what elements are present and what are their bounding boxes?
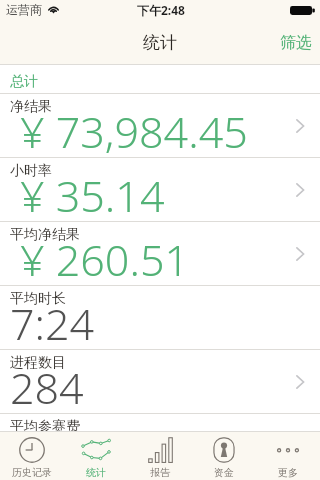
button[interactable]: 小时率 <box>0 158 320 222</box>
staticText: 资金 <box>214 466 234 479</box>
staticText: 下午2:48 <box>137 2 185 18</box>
staticText: 报告 <box>150 466 170 479</box>
staticText: 运营商 <box>6 2 42 17</box>
staticText: 平均净结果 <box>10 226 80 244</box>
staticText: ¥ 35.14 <box>20 166 165 225</box>
staticText: 进程数目 <box>10 354 66 372</box>
button[interactable]: 平均时长 <box>0 286 320 350</box>
staticText: 平均时长 <box>10 290 66 308</box>
staticText: 小时率 <box>10 162 52 180</box>
staticText: 更多 <box>278 466 298 479</box>
button[interactable]: 平均净结果 <box>0 222 320 286</box>
staticText: 统计 <box>143 32 177 53</box>
staticText: ¥ 73,984.45 <box>20 102 248 161</box>
staticText: 总计 <box>10 73 38 91</box>
staticText: 筛选 <box>280 33 312 53</box>
staticText: 7:24 <box>10 294 95 353</box>
staticText: 统计 <box>86 466 106 479</box>
staticText: 历史记录 <box>12 466 52 479</box>
button[interactable]: 历史记录 <box>0 431 64 480</box>
staticText: 284 <box>10 358 84 417</box>
button[interactable]: 筛选 <box>266 20 320 65</box>
staticText: 平均参赛费 <box>10 418 80 435</box>
button[interactable]: 更多 <box>256 431 320 480</box>
button[interactable]: 净结果 <box>0 94 320 158</box>
button[interactable]: 统计 <box>64 431 128 480</box>
button[interactable]: 进程数目 <box>0 350 320 414</box>
staticText: ¥ 260.51 <box>20 230 189 289</box>
staticText: 净结果 <box>10 98 52 116</box>
button[interactable]: 报告 <box>128 431 192 480</box>
button[interactable]: 资金 <box>192 431 256 480</box>
